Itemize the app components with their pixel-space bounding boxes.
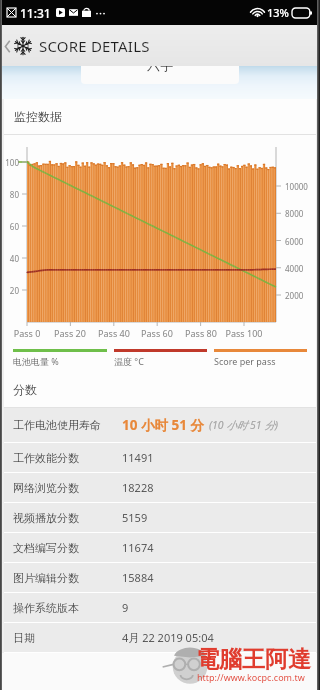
button[interactable]: 操作系统版本 — [4, 593, 316, 622]
staticText: 18228 — [122, 480, 154, 495]
button[interactable]: 工作效能分数 — [4, 443, 316, 472]
staticText: 100 — [4, 157, 19, 168]
staticText: 2000 — [285, 290, 304, 301]
button[interactable]: 图片编辑分数 — [4, 563, 316, 592]
button[interactable]: 监控数据 — [4, 99, 316, 134]
staticText: 8000 — [285, 208, 304, 219]
staticText: 40 — [4, 253, 19, 264]
button[interactable]: 日期 — [4, 623, 316, 652]
staticText: 日期 — [13, 631, 122, 645]
staticText: 11491 — [122, 450, 154, 465]
staticText: 4月 22 2019 05:04 — [122, 630, 214, 645]
button[interactable]: Back — [2, 28, 13, 64]
staticText: 4000 — [285, 263, 304, 274]
staticText: 10 小时 51 分 — [122, 416, 204, 434]
staticText: 15884 — [122, 570, 154, 585]
staticText: SCORE DETAILS — [39, 36, 150, 56]
staticText: 11674 — [122, 540, 154, 555]
staticText: 电池电量 % — [13, 355, 59, 367]
button[interactable]: 视频播放分数 — [4, 503, 316, 532]
staticText: 工作电池使用寿命 — [13, 418, 122, 432]
button[interactable]: 分数 — [4, 371, 316, 407]
staticText: 5159 — [122, 510, 148, 525]
staticText: 10000 — [285, 181, 308, 192]
staticText: Pass 40 — [93, 327, 135, 339]
button[interactable]: 网络浏览分数 — [4, 473, 316, 502]
staticText: 监控数据 — [14, 109, 62, 124]
staticText: 80 — [4, 189, 19, 200]
staticText: Pass 100 — [223, 327, 265, 339]
staticText: 工作效能分数 — [13, 451, 122, 465]
staticText: 11:31 — [20, 5, 51, 21]
staticText: Pass 80 — [180, 327, 222, 339]
staticText: 13% — [267, 5, 289, 20]
staticText: (10 小时 51 分) — [209, 418, 278, 432]
staticText: 電腦王阿達 — [196, 645, 311, 674]
staticText: 视频播放分数 — [13, 511, 122, 525]
staticText: 6000 — [285, 236, 304, 247]
staticText: 图片编辑分数 — [13, 571, 122, 585]
staticText: Pass 20 — [49, 327, 91, 339]
staticText: 网络浏览分数 — [13, 481, 122, 495]
staticText: 9 — [122, 600, 129, 615]
staticText: 20 — [4, 285, 19, 296]
button[interactable]: 工作电池使用寿命 — [4, 408, 316, 442]
button[interactable]: 文档编写分数 — [4, 533, 316, 562]
staticText: Pass 60 — [136, 327, 178, 339]
staticText: Score per pass — [214, 355, 276, 367]
staticText: 操作系统版本 — [13, 601, 122, 615]
staticText: 分数 — [13, 382, 37, 397]
staticText: 温度 °C — [114, 355, 144, 367]
staticText: 60 — [4, 221, 19, 232]
staticText: 六字 — [147, 66, 173, 73]
staticText: Pass 0 — [6, 327, 48, 339]
staticText: 文档编写分数 — [13, 541, 122, 555]
staticText: http://www.kocpc.com.tw — [197, 671, 305, 683]
